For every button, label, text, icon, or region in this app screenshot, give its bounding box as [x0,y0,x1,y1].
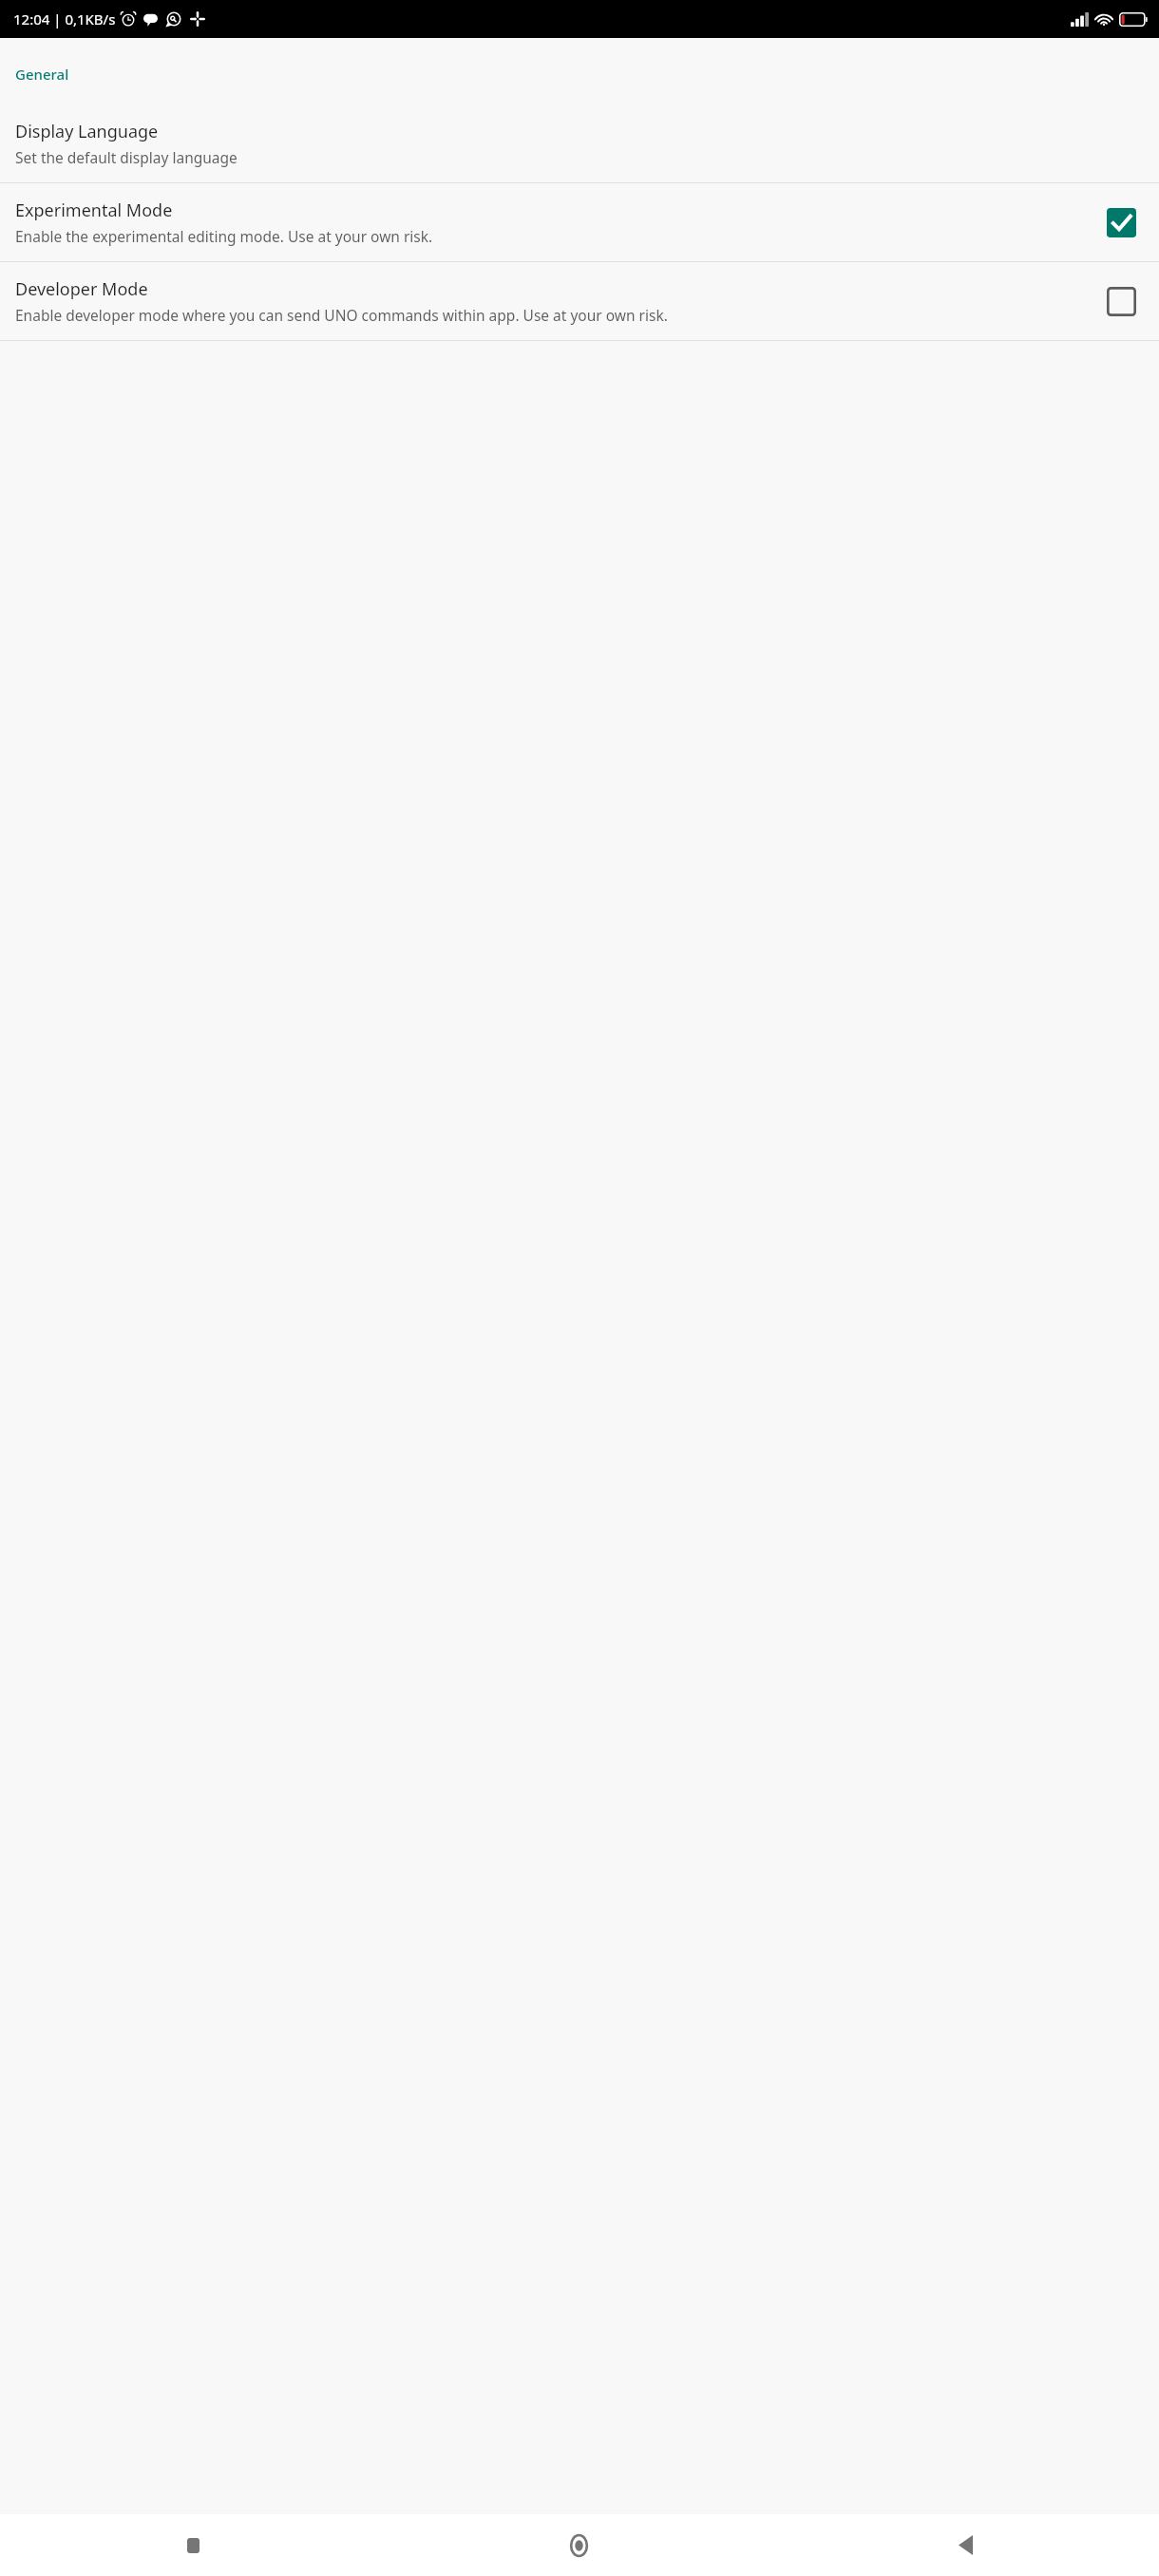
staticText: Developer Mode [15,277,148,301]
staticText: General [15,65,69,84]
button[interactable]: Developer Mode [0,262,1159,340]
button[interactable]: Home [386,2514,772,2576]
button[interactable]: Display Language [0,104,1159,182]
staticText: 12:04 | 0,1KB/s [13,9,116,28]
button[interactable]: Back [772,2514,1159,2576]
staticText: Enable developer mode where you can send… [15,305,668,325]
staticText: Experimental Mode [15,199,173,222]
button[interactable]: Checked [1098,199,1144,245]
button[interactable]: Experimental Mode [0,183,1159,261]
staticText: Enable the experimental editing mode. Us… [15,226,433,246]
button[interactable]: Unchecked [1098,278,1144,324]
button[interactable]: Recents [0,2514,386,2576]
staticText: Display Language [15,120,159,143]
staticText: Set the default display language [15,147,237,167]
